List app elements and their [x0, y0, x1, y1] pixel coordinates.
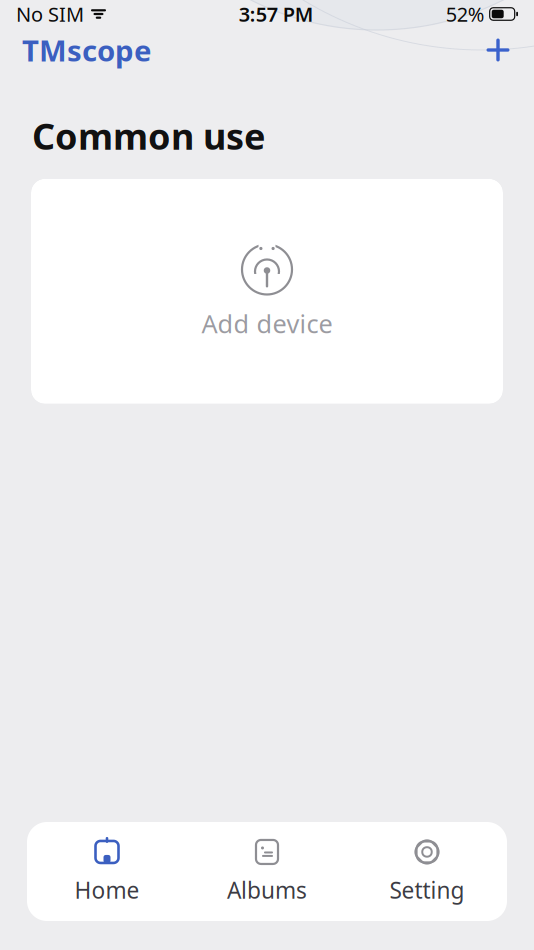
- staticText: 52%: [446, 1, 485, 27]
- staticText: Albums: [227, 875, 307, 905]
- staticText: 3:57 PM: [239, 1, 314, 27]
- staticText: Setting: [389, 875, 464, 905]
- button[interactable]: TMscope: [16, 26, 158, 73]
- staticText: Add device: [201, 306, 332, 340]
- staticText: Home: [74, 875, 139, 905]
- staticText: TMscope: [22, 30, 152, 69]
- button[interactable]: Home: [27, 822, 187, 921]
- staticText: Common use: [32, 112, 265, 160]
- staticText: No SIM: [16, 1, 84, 27]
- button[interactable]: Add device: [31, 179, 503, 404]
- button[interactable]: Setting: [347, 822, 507, 921]
- button[interactable]: Albums: [187, 822, 347, 921]
- button[interactable]: Add: [476, 30, 520, 70]
